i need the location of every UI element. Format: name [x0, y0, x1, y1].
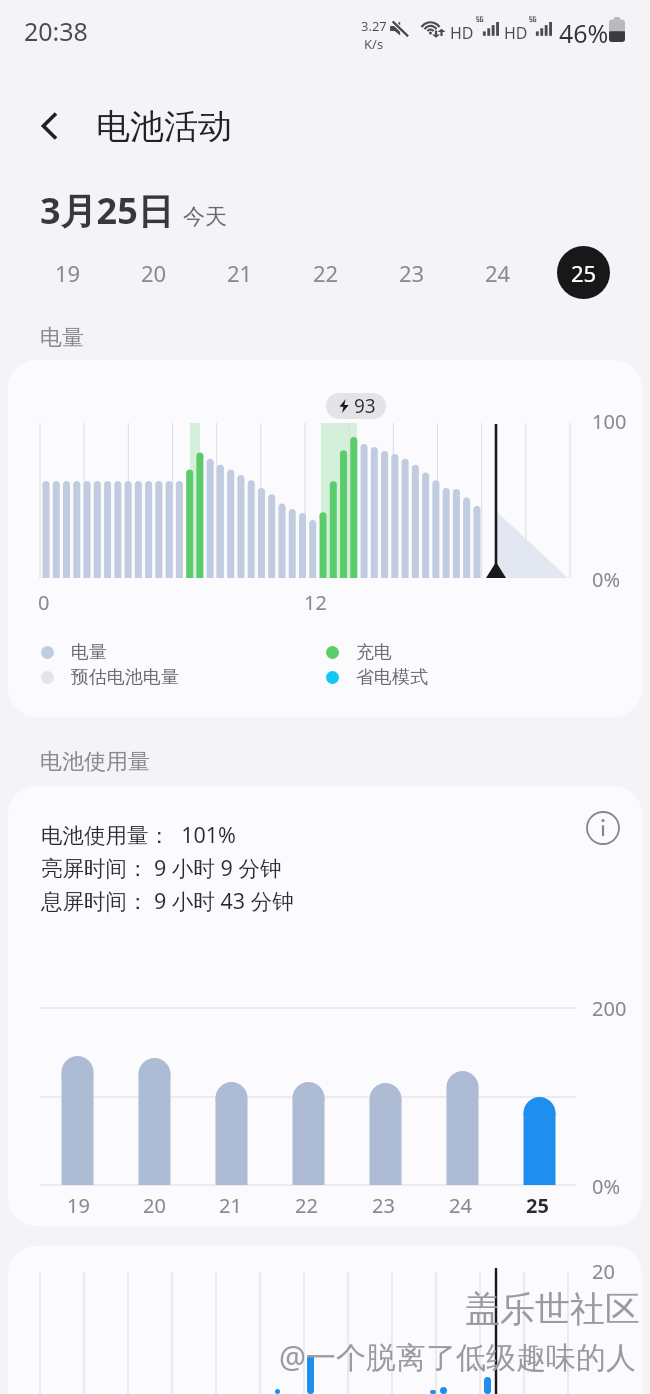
staticText: 20	[143, 1192, 166, 1219]
staticText: 充电	[356, 641, 392, 664]
staticText: 19	[67, 1192, 90, 1219]
staticText: 23	[399, 258, 425, 288]
button[interactable]: Info	[582, 807, 624, 849]
staticText: 20	[592, 1258, 615, 1285]
staticText: 0%	[592, 1173, 621, 1200]
staticText: 电量	[40, 324, 84, 352]
staticText: 46%	[559, 16, 609, 50]
button[interactable]: 19	[41, 246, 94, 299]
staticText: 盖乐世社区	[465, 1287, 640, 1331]
button[interactable]: 25	[557, 246, 610, 299]
staticText: 93	[354, 393, 376, 419]
staticText: 12	[304, 589, 327, 616]
staticText: 24	[449, 1192, 472, 1219]
staticText: 电量	[71, 641, 107, 664]
button[interactable]: 充电	[326, 640, 392, 665]
staticText: 22	[295, 1192, 318, 1219]
staticText: 24	[485, 258, 511, 288]
staticText: HD	[504, 22, 528, 44]
staticText: 20:38	[24, 14, 88, 48]
staticText: 25	[571, 258, 597, 288]
button[interactable]: Back	[26, 102, 74, 150]
button[interactable]: 20	[127, 246, 180, 299]
staticText: 100	[592, 408, 627, 435]
staticText: 200	[592, 995, 627, 1022]
staticText: K/s	[364, 35, 384, 53]
staticText: 0	[38, 589, 50, 616]
button[interactable]: 省电模式	[326, 665, 428, 690]
button[interactable]: 预估电池电量	[41, 665, 179, 690]
staticText: @一个脱离了低级趣味的人	[279, 1336, 636, 1377]
staticText: 电池使用量： 101% 亮屏时间： 9 小时 9 分钟 息屏时间： 9 小时 4…	[41, 820, 294, 915]
button[interactable]: 24	[471, 246, 524, 299]
staticText: 预估电池电量	[71, 666, 179, 689]
staticText: 21	[219, 1192, 242, 1219]
button[interactable]: 22	[299, 246, 352, 299]
staticText: 今天	[183, 203, 227, 231]
staticText: 22	[313, 258, 339, 288]
staticText: 25	[526, 1192, 549, 1219]
staticText: 21	[227, 258, 253, 288]
staticText: 3.27	[361, 17, 387, 35]
staticText: 3月25日	[40, 186, 174, 235]
staticText: 0%	[592, 566, 621, 593]
staticText: 电池使用量	[40, 748, 150, 776]
staticText: 省电模式	[356, 666, 428, 689]
button[interactable]: 23	[385, 246, 438, 299]
button[interactable]: 21	[213, 246, 266, 299]
staticText: 19	[55, 258, 81, 288]
staticText: 20	[141, 258, 167, 288]
staticText: 23	[372, 1192, 395, 1219]
staticText: HD	[450, 22, 474, 44]
staticText: 电池活动	[96, 105, 232, 148]
button[interactable]: 电量	[41, 640, 107, 665]
